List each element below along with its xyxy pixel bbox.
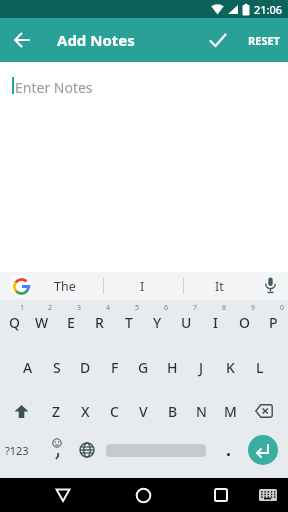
button[interactable] [8,26,36,54]
staticText: RESET [248,33,280,48]
staticText: Enter Notes [15,78,93,97]
button[interactable] [260,276,280,296]
staticText: K [226,358,235,377]
button[interactable]: F [100,345,129,389]
button[interactable]: W [28,300,56,345]
button[interactable] [72,433,101,467]
staticText: 6 [164,303,169,313]
staticText: E [67,313,75,332]
staticText: X [81,402,90,421]
button[interactable]: O [230,300,259,345]
staticText: 0 [280,303,285,313]
button[interactable]: I [130,278,155,295]
button[interactable]: J [187,345,216,389]
button[interactable] [49,481,77,509]
button[interactable] [256,483,280,507]
staticText: U [181,313,192,332]
button[interactable] [207,481,235,509]
staticText: 5 [135,303,140,313]
staticText: N [196,402,207,421]
button[interactable]: Z [42,389,71,433]
button[interactable]: V [129,389,158,433]
staticText: O [239,313,250,332]
button[interactable]: X [71,389,100,433]
staticText: J [199,358,204,377]
staticText: D [80,358,91,377]
staticText: P [269,313,278,332]
button[interactable]: K [216,345,245,389]
staticText: G [138,358,149,377]
staticText: C [110,402,119,421]
button[interactable]: N [187,389,216,433]
staticText: V [139,402,148,421]
staticText: I [213,313,218,332]
staticText: I [140,278,145,295]
button[interactable]: U [172,300,201,345]
button[interactable]: It [205,278,234,295]
staticText: A [23,358,33,377]
button[interactable]: M [216,389,245,433]
button[interactable]: The [44,278,86,295]
button[interactable]: P [259,300,288,345]
staticText: 1 [20,303,25,313]
staticText: 21:06 [254,2,283,17]
button[interactable] [245,389,288,433]
button[interactable] [0,389,42,433]
button[interactable]: Q [0,300,28,345]
staticText: 9 [251,303,256,313]
staticText: Q [9,313,20,332]
staticText: R [95,313,104,332]
staticText: 8 [222,303,227,313]
staticText: 3 [77,303,82,313]
staticText: L [256,358,264,377]
button[interactable]: T [114,300,143,345]
button[interactable] [129,481,157,509]
button[interactable] [43,433,72,467]
button[interactable] [245,433,288,467]
button[interactable]: ?123 [0,433,43,467]
button[interactable]: E [56,300,85,345]
button[interactable]: Y [143,300,172,345]
button[interactable] [216,433,245,467]
button[interactable] [203,25,233,55]
staticText: T [125,313,133,332]
button[interactable]: C [100,389,129,433]
button[interactable] [101,433,216,467]
button[interactable]: L [245,345,274,389]
button[interactable] [10,275,32,297]
button[interactable]: G [129,345,158,389]
staticText: F [111,358,119,377]
staticText: 7 [193,303,198,313]
button[interactable]: I [201,300,230,345]
staticText: B [168,402,178,421]
button[interactable]: A [14,345,42,389]
staticText: 2 [48,303,53,313]
staticText: Z [52,402,61,421]
staticText: H [167,358,178,377]
staticText: S [53,358,61,377]
staticText: Y [153,313,162,332]
button[interactable]: H [158,345,187,389]
staticText: ?123 [5,443,29,458]
staticText: Add Notes [57,30,135,50]
staticText: It [215,278,224,295]
staticText: W [35,313,49,332]
staticText: The [54,278,76,295]
staticText: 4 [106,303,111,313]
button[interactable]: D [71,345,100,389]
button[interactable]: S [42,345,71,389]
button[interactable]: B [158,389,187,433]
button[interactable]: R [85,300,114,345]
staticText: M [224,402,237,421]
button[interactable]: RESET [246,31,282,50]
